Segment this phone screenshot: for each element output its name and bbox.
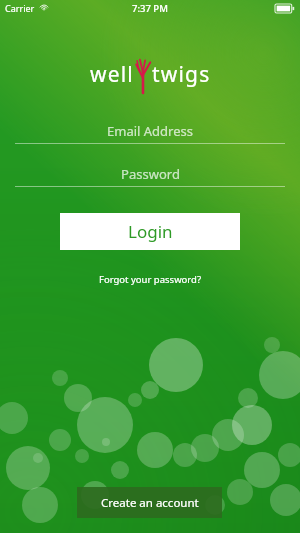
staticText: well [90, 60, 134, 89]
staticText: 7:37 PM [132, 2, 168, 15]
button[interactable]: Forgot your password? [91, 270, 210, 289]
button[interactable]: Email Address [15, 118, 285, 144]
staticText: Password [121, 165, 180, 183]
staticText: Forgot your password? [99, 273, 202, 286]
button[interactable]: Password [15, 161, 285, 187]
staticText: Create an account [101, 495, 199, 511]
button[interactable]: Create an account [77, 487, 222, 518]
button[interactable]: Login [60, 213, 240, 250]
staticText: twigs [152, 60, 211, 89]
staticText: Email Address [107, 122, 193, 140]
staticText: Login [128, 220, 173, 243]
staticText: Carrier [5, 2, 35, 14]
